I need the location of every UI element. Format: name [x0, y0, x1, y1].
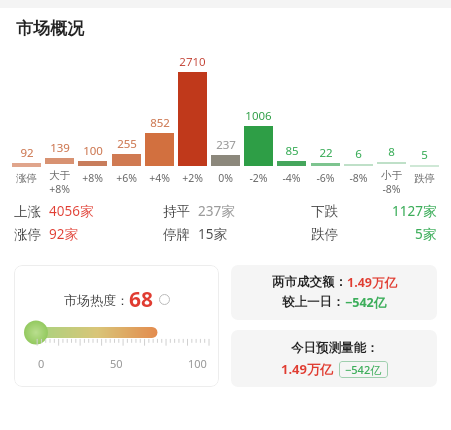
staticText: 5	[421, 147, 428, 163]
staticText: −542亿	[345, 294, 387, 311]
staticText: 1127家	[392, 202, 437, 220]
staticText: 852	[150, 115, 170, 131]
staticText: 6	[355, 146, 362, 162]
staticText: 4056家	[49, 202, 94, 220]
staticText: 市场热度：	[64, 292, 129, 308]
staticText: 139	[50, 140, 70, 156]
staticText: 22	[319, 145, 333, 161]
staticText: 100	[188, 356, 207, 371]
staticText: 较上一日：	[282, 294, 345, 310]
staticText: +4%	[149, 171, 170, 185]
staticText: 237	[216, 137, 236, 153]
staticText: 8	[388, 144, 395, 160]
staticText: 持平	[163, 203, 190, 220]
staticText: -8%	[382, 182, 401, 196]
staticText: 0	[38, 356, 45, 371]
staticText: +8%	[82, 171, 103, 185]
staticText: 涨停	[14, 226, 41, 243]
staticText: 5家	[415, 225, 437, 243]
staticText: -4%	[282, 171, 301, 185]
staticText: 1006	[245, 108, 272, 124]
staticText: 2710	[179, 54, 206, 70]
staticText: 涨停	[16, 172, 37, 185]
staticText: 1.49万亿	[281, 360, 333, 378]
staticText: 100	[83, 143, 103, 159]
button[interactable]: 两市成交额：	[231, 265, 437, 320]
staticText: 市场概况	[16, 18, 84, 39]
staticText: 237家	[198, 202, 235, 220]
staticText: 68	[129, 285, 154, 314]
staticText: 停牌	[163, 226, 190, 243]
staticText: 15家	[198, 225, 227, 243]
button[interactable]: 今日预测量能：	[231, 330, 437, 387]
staticText: 大于	[49, 169, 70, 182]
staticText: 255	[117, 136, 137, 152]
staticText: 小于	[381, 169, 402, 182]
staticText: 两市成交额：	[272, 274, 347, 290]
staticText: +2%	[182, 171, 203, 185]
staticText: +6%	[116, 171, 137, 185]
staticText: 下跌	[311, 203, 392, 220]
staticText: 85	[285, 143, 299, 159]
other: 帮助说明	[159, 294, 170, 305]
staticText: −542亿	[345, 362, 382, 377]
staticText: +8%	[49, 182, 70, 196]
staticText: -2%	[249, 171, 268, 185]
staticText: 0%	[218, 171, 233, 185]
staticText: 上涨	[14, 203, 41, 220]
staticText: 跌停	[414, 172, 435, 185]
staticText: 1.49万亿	[347, 274, 397, 291]
staticText: -8%	[349, 171, 368, 185]
button[interactable]: 市场热度：	[14, 265, 219, 387]
staticText: 今日预测量能：	[291, 340, 379, 356]
staticText: 50	[110, 356, 123, 371]
staticText: 92	[20, 145, 34, 161]
staticText: -6%	[316, 171, 335, 185]
staticText: 跌停	[311, 226, 415, 243]
staticText: 92家	[49, 225, 78, 243]
